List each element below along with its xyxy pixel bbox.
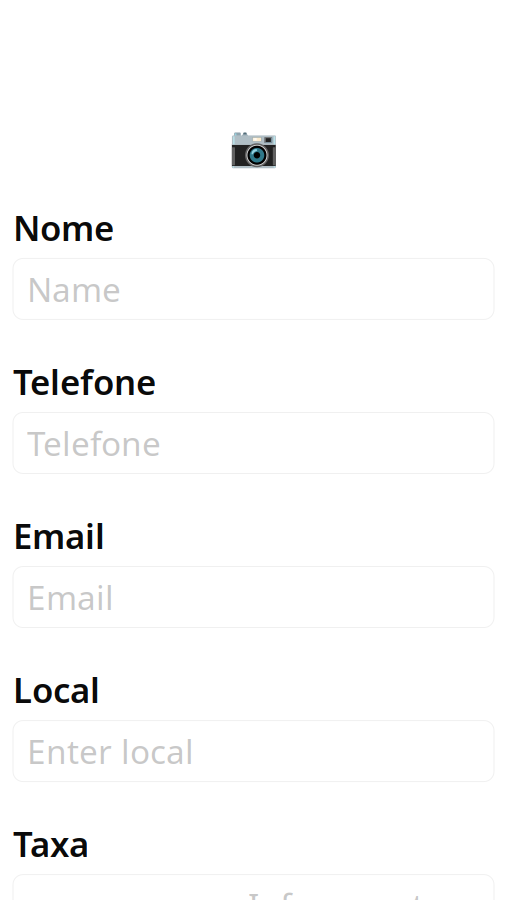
staticText: Name	[27, 267, 121, 311]
staticText: Email	[27, 575, 114, 619]
staticText: Telefone	[13, 358, 156, 404]
staticText: Email	[13, 512, 105, 558]
staticText: Enter local	[27, 729, 194, 773]
staticText: 📷	[228, 124, 278, 169]
button[interactable]: Enter local	[13, 721, 494, 782]
button[interactable]: Name	[13, 258, 494, 319]
button[interactable]: Email	[13, 566, 494, 627]
staticText: Taxa	[13, 821, 89, 867]
staticText: Nome	[13, 204, 114, 250]
button[interactable]: Telefone	[13, 412, 494, 473]
staticText: Local	[13, 666, 100, 712]
staticText: Informe a taxa	[248, 883, 480, 900]
staticText: Telefone	[27, 421, 161, 465]
button[interactable]: Add photo	[231, 129, 275, 163]
button[interactable]: Informe a taxa	[13, 875, 494, 900]
